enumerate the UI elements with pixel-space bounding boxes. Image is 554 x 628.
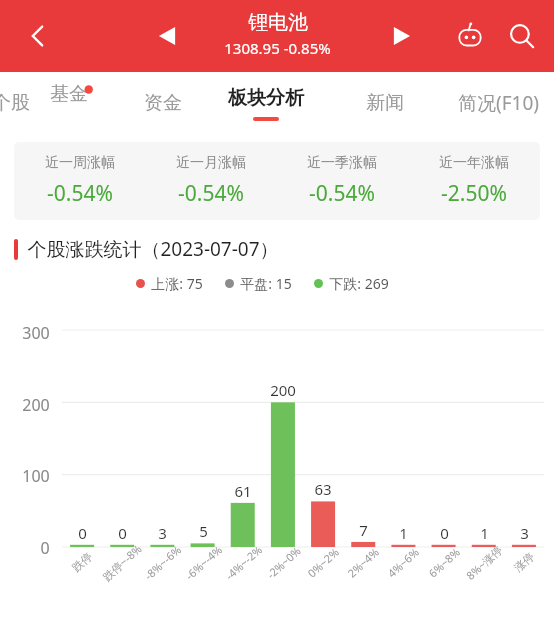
button[interactable]: Assistant <box>448 14 492 58</box>
button[interactable]: 近一周涨幅 <box>14 154 145 208</box>
staticText: 3 <box>158 523 167 543</box>
staticText: 0 <box>440 523 449 543</box>
button[interactable]: 基金 <box>44 72 100 134</box>
button[interactable]: 简况(F10) <box>452 80 545 126</box>
staticText: 3 <box>520 523 529 543</box>
staticText: -0.54% <box>309 179 375 208</box>
staticText: 0 <box>40 537 50 559</box>
button[interactable]: 板块分析 <box>222 86 310 121</box>
staticText: -0.54% <box>178 179 244 208</box>
staticText: 上涨: 75 <box>151 274 203 293</box>
staticText: -8%~-6% <box>141 542 184 583</box>
staticText: 61 <box>234 481 252 501</box>
staticText: 个股 <box>0 91 30 115</box>
staticText: 近一年涨幅 <box>439 154 509 172</box>
button[interactable]: Next <box>380 14 424 58</box>
button[interactable]: 个股 <box>0 81 38 125</box>
staticText: 63 <box>314 479 332 499</box>
staticText: 平盘: 15 <box>240 274 292 293</box>
staticText: 跌停~-8% <box>99 541 145 584</box>
staticText: 资金 <box>144 91 182 115</box>
staticText: 锂电池 <box>248 10 308 35</box>
staticText: 0%~2% <box>304 544 342 581</box>
staticText: 300 <box>22 322 50 344</box>
staticText: 近一季涨幅 <box>307 154 377 172</box>
staticText: 1308.95 -0.85% <box>224 38 331 58</box>
staticText: -2%~0% <box>263 543 304 582</box>
button[interactable]: Back <box>14 12 62 60</box>
staticText: 8%~涨停 <box>463 542 505 583</box>
staticText: -4%~-2% <box>222 542 265 583</box>
staticText: 0 <box>118 523 127 543</box>
button[interactable]: 近一月涨幅 <box>145 154 276 208</box>
staticText: 涨停 <box>511 549 537 574</box>
staticText: 基金 <box>50 82 88 106</box>
staticText: 个股涨跌统计（2023-07-07） <box>27 236 279 262</box>
staticText: -2.50% <box>441 179 507 208</box>
staticText: 简况(F10) <box>458 90 539 116</box>
staticText: 1 <box>399 523 408 543</box>
staticText: 7 <box>359 520 368 540</box>
staticText: -6%~-4% <box>182 542 225 583</box>
staticText: 4%~6% <box>384 544 422 581</box>
button[interactable]: 近一年涨幅 <box>408 154 540 208</box>
staticText: 0 <box>78 523 87 543</box>
button[interactable]: 新闻 <box>360 81 410 125</box>
staticText: 6%~8% <box>425 544 463 581</box>
staticText: 近一月涨幅 <box>176 154 246 172</box>
staticText: 跌停 <box>69 549 95 574</box>
staticText: 新闻 <box>366 91 404 115</box>
button[interactable]: Previous <box>145 14 189 58</box>
staticText: 2%~4% <box>344 544 382 581</box>
staticText: 5 <box>199 521 208 541</box>
staticText: 100 <box>22 465 50 487</box>
staticText: -0.54% <box>47 179 113 208</box>
button[interactable]: Search <box>498 12 546 60</box>
staticText: 200 <box>270 380 296 400</box>
staticText: 近一周涨幅 <box>45 154 115 172</box>
staticText: 板块分析 <box>228 86 304 110</box>
button[interactable]: 近一季涨幅 <box>276 154 408 208</box>
button[interactable]: 资金 <box>138 81 188 125</box>
staticText: 下跌: 269 <box>329 274 389 293</box>
staticText: 200 <box>22 394 50 416</box>
staticText: 1 <box>480 523 489 543</box>
